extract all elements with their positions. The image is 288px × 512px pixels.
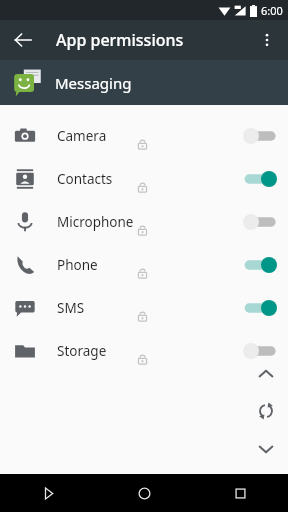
- button[interactable]: Recent apps: [192, 474, 288, 512]
- button[interactable]: Refresh: [244, 400, 288, 422]
- button[interactable]: SMS permission toggle: [238, 290, 282, 326]
- button[interactable]: Home: [96, 474, 192, 512]
- staticText: Camera: [57, 127, 107, 145]
- button[interactable]: Camera: [0, 114, 288, 157]
- staticText: Phone: [57, 256, 98, 274]
- button[interactable]: Contacts: [0, 157, 288, 200]
- staticText: SMS: [57, 299, 85, 317]
- button[interactable]: Contacts permission toggle: [238, 161, 282, 197]
- button[interactable]: Camera permission toggle: [238, 118, 282, 154]
- button[interactable]: Scroll up: [244, 363, 288, 385]
- button[interactable]: Phone permission toggle: [238, 247, 282, 283]
- button[interactable]: Microphone permission toggle: [238, 204, 282, 240]
- button[interactable]: Messaging: [0, 60, 288, 105]
- staticText: 6:00: [261, 3, 283, 18]
- button[interactable]: More options: [250, 23, 284, 57]
- button[interactable]: Scroll down: [244, 438, 288, 460]
- button[interactable]: Phone: [0, 243, 288, 286]
- button[interactable]: SMS: [0, 286, 288, 329]
- staticText: Contacts: [57, 170, 113, 188]
- button[interactable]: Storage permission toggle: [238, 333, 282, 369]
- button[interactable]: Storage: [0, 329, 288, 372]
- button[interactable]: Back: [6, 23, 40, 57]
- button[interactable]: Back: [0, 474, 96, 512]
- staticText: Messaging: [55, 73, 132, 93]
- staticText: Storage: [57, 342, 107, 360]
- button[interactable]: Microphone: [0, 200, 288, 243]
- staticText: Microphone: [57, 213, 134, 231]
- staticText: App permissions: [56, 29, 184, 51]
